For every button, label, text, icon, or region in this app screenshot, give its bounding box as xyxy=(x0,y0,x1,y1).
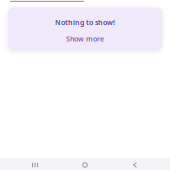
staticText: Nothing to show! xyxy=(55,17,115,27)
button[interactable]: Recents xyxy=(23,158,47,170)
button[interactable]: Show more xyxy=(66,34,104,44)
button[interactable]: Home xyxy=(73,158,97,170)
button[interactable]: Back xyxy=(123,158,147,170)
staticText: Show more xyxy=(66,34,104,44)
